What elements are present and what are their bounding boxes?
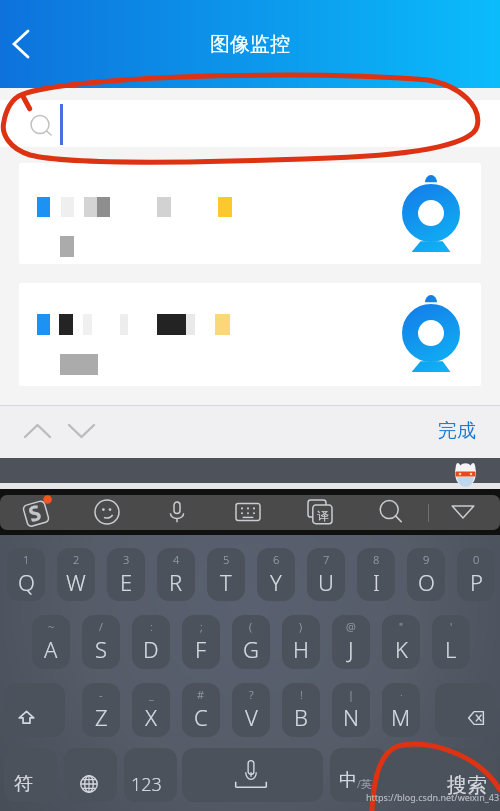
staticText: 符: [14, 772, 33, 796]
button[interactable]: 中: [330, 748, 387, 802]
button[interactable]: 1: [7, 548, 45, 601]
staticText: 1: [23, 552, 30, 567]
button[interactable]: Delete: [435, 683, 496, 737]
staticText: ~: [48, 619, 55, 634]
button[interactable]: ?: [232, 683, 270, 737]
staticText: H: [293, 634, 309, 664]
staticText: 2: [73, 552, 80, 567]
staticText: ": [399, 619, 404, 634]
button[interactable]: Keyboard layout: [225, 489, 271, 535]
staticText: N: [343, 702, 360, 732]
button[interactable]: 123: [124, 748, 177, 802]
staticText: 3: [123, 552, 130, 567]
button[interactable]: 完成: [438, 419, 476, 443]
staticText: F: [195, 634, 207, 664]
button[interactable]: ): [282, 615, 320, 669]
button[interactable]: Previous field: [15, 414, 60, 450]
button[interactable]: 5: [207, 548, 245, 601]
staticText: :: [150, 619, 153, 634]
staticText: V: [245, 702, 258, 732]
staticText: X: [145, 702, 158, 732]
button[interactable]: 6: [257, 548, 295, 601]
staticText: Z: [95, 702, 108, 732]
staticText: Y: [270, 567, 282, 597]
button[interactable]: :: [132, 615, 170, 669]
button[interactable]: ~: [32, 615, 70, 669]
staticText: -: [99, 687, 103, 702]
staticText: ): [299, 619, 303, 634]
button[interactable]: Next field: [59, 414, 104, 450]
staticText: I: [373, 567, 380, 597]
button[interactable]: /: [82, 615, 120, 669]
button[interactable]: ': [432, 615, 470, 669]
button[interactable]: Emoji: [84, 489, 130, 535]
button[interactable]: ": [382, 615, 420, 669]
staticText: B: [294, 702, 308, 732]
staticText: K: [395, 634, 408, 664]
button[interactable]: 8: [357, 548, 395, 601]
button[interactable]: Language: [64, 748, 117, 802]
staticText: O: [418, 567, 435, 597]
staticText: |: [348, 687, 354, 702]
staticText: R: [169, 567, 183, 597]
staticText: 4: [173, 552, 180, 567]
button[interactable]: -: [82, 683, 120, 737]
staticText: L: [445, 634, 457, 664]
button[interactable]: 7: [307, 548, 345, 601]
staticText: J: [348, 634, 354, 664]
staticText: D: [143, 634, 159, 664]
button[interactable]: Hide keyboard: [440, 489, 486, 535]
staticText: _: [149, 687, 154, 702]
staticText: 123: [131, 772, 162, 797]
button[interactable]: ;: [182, 615, 220, 669]
staticText: C: [194, 702, 208, 732]
staticText: https://blog.csdn.net/weixin_43130844: [366, 791, 500, 803]
button[interactable]: Voice input: [154, 489, 200, 535]
button[interactable]: 3: [107, 548, 145, 601]
staticText: 8: [373, 552, 380, 567]
staticText: 0: [473, 552, 480, 567]
button[interactable]: @: [332, 615, 370, 669]
staticText: ': [450, 619, 453, 634]
staticText: U: [318, 567, 334, 597]
button[interactable]: Space: [182, 748, 323, 802]
staticText: E: [120, 567, 133, 597]
staticText: 9: [423, 552, 430, 567]
button[interactable]: Shift: [4, 683, 65, 737]
staticText: !: [300, 687, 303, 702]
staticText: P: [470, 567, 483, 597]
button[interactable]: 2: [57, 548, 95, 601]
button[interactable]: 符: [4, 748, 57, 802]
staticText: /英: [357, 776, 372, 791]
staticText: S: [95, 634, 108, 664]
staticText: ·: [400, 687, 403, 702]
button[interactable]: |: [332, 683, 370, 737]
staticText: M: [391, 702, 411, 732]
staticText: 完成: [438, 419, 476, 443]
button[interactable]: [0, 100, 500, 147]
button[interactable]: (: [232, 615, 270, 669]
button[interactable]: Translate: [297, 489, 343, 535]
button[interactable]: [19, 163, 481, 264]
button[interactable]: [19, 283, 481, 386]
staticText: 5: [223, 552, 230, 567]
staticText: (: [249, 619, 253, 634]
button[interactable]: ·: [382, 683, 420, 737]
staticText: ;: [200, 619, 203, 634]
button[interactable]: Back: [0, 22, 44, 66]
button[interactable]: Sogou input settings: [13, 489, 59, 535]
button[interactable]: #: [182, 683, 220, 737]
button[interactable]: 0: [457, 548, 495, 601]
staticText: 7: [323, 552, 330, 567]
button[interactable]: !: [282, 683, 320, 737]
staticText: ?: [249, 687, 254, 702]
button[interactable]: 9: [407, 548, 445, 601]
button[interactable]: 4: [157, 548, 195, 601]
staticText: Q: [18, 567, 35, 597]
staticText: T: [220, 567, 232, 597]
button[interactable]: Search: [368, 489, 414, 535]
staticText: 中: [339, 769, 357, 792]
button[interactable]: 搜索: [387, 748, 497, 802]
staticText: S: [25, 498, 45, 529]
button[interactable]: _: [132, 683, 170, 737]
